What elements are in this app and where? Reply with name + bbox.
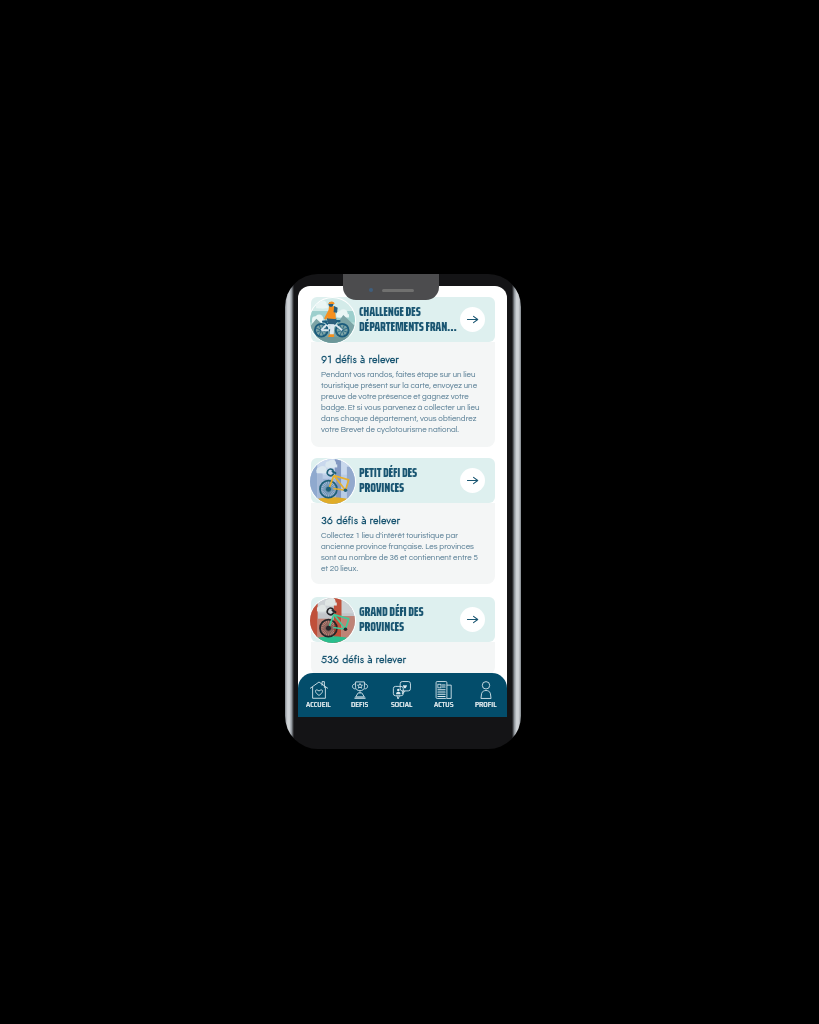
button[interactable]: PROFIL — [465, 673, 507, 717]
button[interactable]: DEFIS — [339, 673, 381, 717]
staticText: PROFIL — [475, 699, 497, 710]
button[interactable]: Ouvrir le défi — [460, 468, 485, 493]
staticText: ACTUS — [434, 699, 454, 710]
staticText: ACCUEIL — [306, 699, 331, 710]
staticText: 91 défis à relever — [321, 352, 400, 367]
button[interactable]: Ouvrir le défi — [460, 307, 485, 332]
staticText: Collectez 1 lieu d'intérêt touristique p… — [321, 531, 482, 572]
staticText: PETIT DÉFI DES PROVINCES — [359, 461, 469, 498]
button[interactable]: CHALLENGE DES DÉPARTEMENTS FRAN... — [311, 297, 495, 342]
button[interactable]: Ouvrir le défi — [460, 607, 485, 632]
staticText: 536 défis à relever — [321, 652, 407, 667]
staticText: Pendant vos randos, faites étape sur un … — [321, 370, 482, 433]
staticText: DEFIS — [351, 699, 369, 710]
button[interactable]: ACCUEIL — [298, 673, 339, 717]
staticText — [321, 670, 482, 675]
button[interactable]: GRAND DÉFI DES PROVINCES — [311, 597, 495, 642]
button[interactable]: ACTUS — [423, 673, 465, 717]
staticText: 36 défis à relever — [321, 513, 401, 528]
staticText: CHALLENGE DES DÉPARTEMENTS FRAN... — [359, 300, 469, 337]
staticText: SOCIAL — [391, 699, 413, 710]
button[interactable]: SOCIAL — [381, 673, 423, 717]
button[interactable]: PETIT DÉFI DES PROVINCES — [311, 458, 495, 503]
staticText: GRAND DÉFI DES PROVINCES — [359, 600, 469, 637]
